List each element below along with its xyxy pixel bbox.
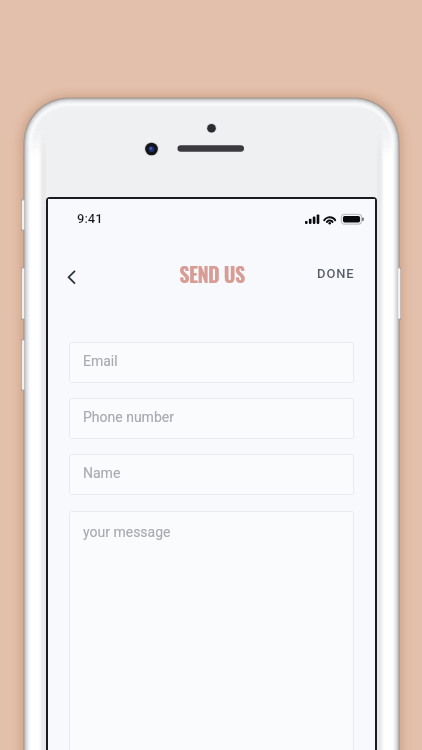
staticText: Name [83,465,121,481]
button[interactable]: Name [69,454,354,495]
staticText: your message [83,524,171,540]
button[interactable]: SEND US [150,258,274,290]
staticText: Email [83,353,118,369]
button[interactable]: DONE [310,261,362,286]
button[interactable]: Email [69,342,354,383]
button[interactable]: your message [69,511,354,750]
staticText: DONE [317,266,355,281]
staticText: Phone number [83,409,174,425]
button[interactable]: Back [56,263,85,292]
button[interactable]: Phone number [69,398,354,439]
staticText: 9:41 [77,211,103,226]
staticText: SEND US [179,259,245,289]
